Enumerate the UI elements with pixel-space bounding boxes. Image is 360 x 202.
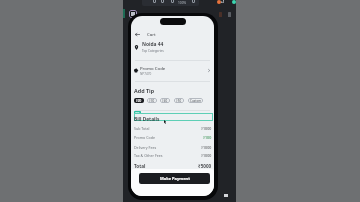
- staticText: ₹1000: [201, 145, 212, 150]
- staticText: Text: [135, 111, 140, 114]
- staticText: Sub Total: [134, 126, 150, 131]
- staticText: ₹20: [136, 99, 142, 103]
- button[interactable]: ₹30: [147, 98, 157, 103]
- button[interactable]: Make Payment: [139, 173, 210, 184]
- button[interactable]: Tool: [171, 0, 174, 3]
- staticText: ₹40: [162, 99, 168, 103]
- staticText: ₹1000: [201, 153, 212, 158]
- staticText: NP7470: [140, 72, 152, 76]
- staticText: ₹1000: [201, 126, 212, 131]
- staticText: Add Tip: [134, 87, 155, 94]
- button[interactable]: Collaborator: [217, 0, 221, 4]
- button[interactable]: ₹40: [160, 98, 170, 103]
- staticText: +1: [221, 0, 225, 4]
- staticText: 100%: [178, 1, 187, 5]
- button[interactable]: ₹20: [134, 98, 144, 103]
- staticText: ₹100: [203, 135, 212, 140]
- button[interactable]: Custom: [188, 98, 203, 103]
- button[interactable]: You: [232, 0, 236, 4]
- staticText: ₹50: [176, 99, 182, 103]
- staticText: Promo Code: [134, 135, 155, 140]
- staticText: Custom: [190, 99, 202, 103]
- staticText: Cart: [147, 31, 156, 37]
- button[interactable]: ₹50: [174, 98, 184, 103]
- button[interactable]: Back: [135, 33, 140, 36]
- staticText: Noida 44: [142, 41, 164, 48]
- staticText: Total: [134, 163, 146, 169]
- staticText: Make Payment: [160, 176, 190, 181]
- staticText: Delivery Fees: [134, 145, 157, 150]
- staticText: Promo Code: [140, 65, 166, 71]
- button[interactable]: Tool: [153, 0, 156, 3]
- staticText: ₹30: [149, 99, 155, 103]
- staticText: Top Categories: [142, 49, 164, 53]
- button[interactable]: Component: [129, 10, 137, 18]
- button[interactable]: Noida 44: [134, 41, 210, 53]
- button[interactable]: Promo Code: [134, 64, 210, 76]
- button[interactable]: Tool: [161, 0, 164, 3]
- staticText: Tax & Other Fees: [134, 153, 163, 158]
- button[interactable]: Tool: [192, 0, 195, 3]
- staticText: ₹5000: [198, 163, 212, 169]
- staticText: Bill Details: [134, 116, 160, 123]
- button[interactable]: Back: [131, 30, 214, 38]
